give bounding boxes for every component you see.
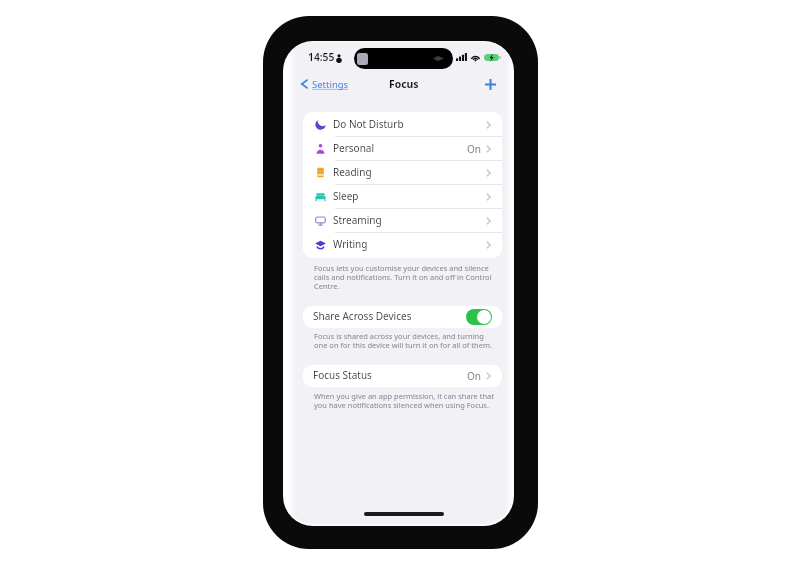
staticText: Settings (312, 78, 349, 91)
button[interactable]: Share Across Devices (303, 306, 502, 328)
button[interactable]: Writing (303, 233, 502, 257)
button[interactable]: Focus Status (303, 365, 502, 387)
staticText: When you give an app permission, it can … (314, 391, 496, 410)
staticText: Do Not Disturb (333, 117, 404, 131)
staticText: Focus is shared across your devices, and… (314, 331, 496, 350)
button[interactable]: Reading (303, 161, 502, 185)
staticText: Focus Status (313, 368, 372, 382)
staticText: Writing (333, 237, 368, 251)
staticText: Share Across Devices (313, 309, 412, 323)
staticText: Focus (389, 77, 419, 91)
button[interactable]: Settings (301, 73, 349, 95)
staticText: Streaming (333, 213, 382, 227)
staticText: Focus lets you customise your devices an… (314, 263, 496, 291)
button[interactable]: Do Not Disturb (303, 113, 502, 137)
staticText: Sleep (333, 189, 359, 203)
button[interactable]: Sleep (303, 185, 502, 209)
staticText: On (467, 369, 481, 383)
staticText: Personal (333, 141, 375, 155)
staticText: On (467, 142, 481, 156)
button[interactable]: Add Focus (480, 74, 500, 94)
staticText: Reading (333, 165, 372, 179)
button[interactable]: Streaming (303, 209, 502, 233)
button[interactable]: Personal (303, 137, 502, 161)
staticText: 14:55 (308, 50, 335, 64)
